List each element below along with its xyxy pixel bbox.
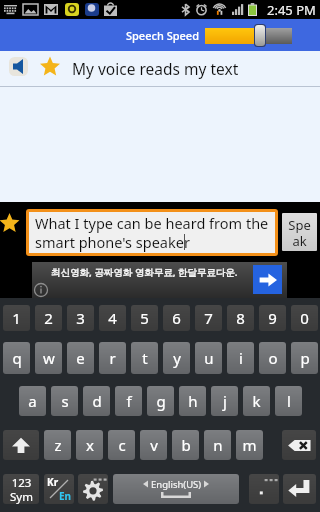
button[interactable]: n bbox=[204, 430, 231, 460]
staticText: 2:45 PM bbox=[267, 1, 316, 19]
button[interactable]: b bbox=[172, 430, 199, 460]
staticText: My voice reads my text bbox=[72, 58, 239, 79]
button[interactable]: Spe ak bbox=[282, 213, 317, 251]
button[interactable]: e bbox=[67, 342, 94, 374]
staticText: 1 bbox=[12, 308, 21, 328]
staticText: k bbox=[252, 391, 261, 411]
staticText: n bbox=[213, 435, 223, 455]
button[interactable]: 123 Sym bbox=[3, 474, 39, 504]
staticText: t bbox=[142, 348, 148, 368]
button[interactable]: f bbox=[115, 386, 142, 416]
staticText: z bbox=[54, 435, 62, 455]
button[interactable]: Settings bbox=[78, 474, 108, 504]
staticText: e bbox=[76, 348, 85, 368]
button[interactable]: 3 bbox=[67, 305, 94, 331]
button[interactable]: c bbox=[108, 430, 135, 460]
staticText: b bbox=[181, 435, 191, 455]
staticText: What I type can be heard from the smart … bbox=[35, 213, 269, 252]
button[interactable]: My voice reads my text bbox=[0, 51, 320, 86]
button[interactable]: Enter bbox=[283, 474, 316, 504]
button[interactable]: y bbox=[163, 342, 190, 374]
button[interactable]: 4 bbox=[99, 305, 126, 331]
staticText: c bbox=[118, 435, 126, 455]
staticText: 0 bbox=[300, 308, 309, 328]
staticText: r bbox=[109, 348, 116, 368]
staticText: 최신영화, 공짜영화 영화무료, 한달무료다운. bbox=[51, 266, 238, 279]
button[interactable]: 7 bbox=[195, 305, 222, 331]
button[interactable]: p bbox=[291, 342, 318, 374]
button[interactable]: o bbox=[259, 342, 286, 374]
button[interactable]: Backspace bbox=[282, 430, 316, 460]
staticText: s bbox=[61, 391, 69, 411]
button[interactable]: Submit bbox=[253, 265, 282, 294]
staticText: p bbox=[300, 348, 310, 368]
staticText: q bbox=[12, 348, 22, 368]
button[interactable]: i bbox=[227, 342, 254, 374]
button[interactable]: l bbox=[275, 386, 302, 416]
button[interactable]: t bbox=[131, 342, 158, 374]
staticText: l bbox=[287, 391, 291, 411]
staticText: a bbox=[28, 391, 37, 411]
staticText: u bbox=[204, 348, 214, 368]
button[interactable]: 9 bbox=[259, 305, 286, 331]
button[interactable]: s bbox=[51, 386, 78, 416]
staticText: h bbox=[188, 391, 198, 411]
button[interactable]: r bbox=[99, 342, 126, 374]
staticText: f bbox=[126, 391, 132, 411]
staticText: 3 bbox=[76, 308, 85, 328]
button[interactable]: z bbox=[44, 430, 71, 460]
button[interactable]: 1 bbox=[3, 305, 30, 331]
staticText: English(US) bbox=[151, 478, 202, 491]
button[interactable]: 2 bbox=[35, 305, 62, 331]
staticText: g bbox=[156, 391, 166, 411]
staticText: 123 Sym bbox=[10, 475, 33, 504]
button[interactable]: Shift bbox=[3, 430, 39, 460]
button[interactable]: 8 bbox=[227, 305, 254, 331]
staticText: v bbox=[150, 435, 158, 455]
button[interactable]: d bbox=[83, 386, 110, 416]
button[interactable]: k bbox=[243, 386, 270, 416]
button[interactable]: Speech Speed bbox=[0, 19, 320, 51]
staticText: En bbox=[59, 489, 72, 503]
staticText: j bbox=[223, 391, 227, 411]
button[interactable]: 0 bbox=[291, 305, 318, 331]
button[interactable]: a bbox=[19, 386, 46, 416]
button[interactable]: h bbox=[179, 386, 206, 416]
staticText: 7 bbox=[204, 308, 213, 328]
button[interactable]: Space bbox=[113, 474, 239, 504]
staticText: 5 bbox=[140, 308, 149, 328]
staticText: 8 bbox=[236, 308, 245, 328]
staticText: m bbox=[242, 435, 257, 455]
button[interactable]: u bbox=[195, 342, 222, 374]
staticText: 4 bbox=[108, 308, 117, 328]
staticText: i bbox=[239, 348, 243, 368]
staticText: d bbox=[92, 391, 102, 411]
button[interactable]: x bbox=[76, 430, 103, 460]
staticText: 6 bbox=[172, 308, 181, 328]
staticText: 9 bbox=[268, 308, 277, 328]
staticText: Speech Speed bbox=[126, 28, 199, 43]
staticText: w bbox=[43, 348, 55, 368]
button[interactable]: m bbox=[236, 430, 263, 460]
staticText: y bbox=[173, 348, 181, 368]
button[interactable]: j bbox=[211, 386, 238, 416]
staticText: o bbox=[268, 348, 278, 368]
button[interactable]: Language Kr En bbox=[44, 474, 74, 504]
button[interactable]: w bbox=[35, 342, 62, 374]
staticText: 2 bbox=[44, 308, 53, 328]
button[interactable]: What I type can be heard from the smart … bbox=[29, 212, 275, 253]
staticText: Kr bbox=[47, 475, 59, 489]
button[interactable]: g bbox=[147, 386, 174, 416]
button[interactable]: 6 bbox=[163, 305, 190, 331]
button[interactable]: v bbox=[140, 430, 167, 460]
button[interactable]: 5 bbox=[131, 305, 158, 331]
staticText: Spe ak bbox=[288, 216, 311, 249]
staticText: x bbox=[86, 435, 94, 455]
button[interactable]: q bbox=[3, 342, 30, 374]
button[interactable]: Period bbox=[249, 474, 279, 504]
